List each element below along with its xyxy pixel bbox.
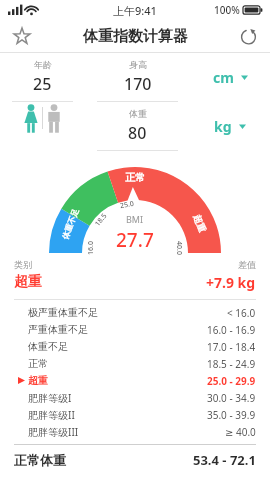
staticText: 53.4 - 72.1	[193, 451, 256, 469]
button[interactable]: Male	[43, 102, 65, 134]
staticText: 体重	[129, 108, 147, 119]
staticText: 18.5 - 24.9	[207, 357, 256, 371]
button[interactable]: 极严重体重不足	[14, 304, 256, 321]
button[interactable]: kg	[190, 102, 270, 150]
button[interactable]: 身高	[85, 53, 190, 101]
staticText: 体重不足	[28, 340, 68, 353]
button[interactable]: cm	[190, 53, 270, 101]
staticText: 27.7	[116, 227, 154, 253]
staticText: 肥胖等级I	[28, 391, 72, 405]
staticText: 35.0 - 39.9	[207, 408, 256, 422]
staticText: 极严重体重不足	[28, 306, 98, 319]
staticText: 超重	[192, 213, 208, 234]
staticText: 25	[33, 73, 52, 95]
button[interactable]: 年龄	[0, 53, 85, 101]
staticText: 正常体重	[14, 452, 66, 468]
staticText: < 16.0	[227, 306, 256, 320]
button[interactable]: 严重体重不足	[14, 321, 256, 338]
button[interactable]: Favorite	[6, 20, 38, 52]
button[interactable]: 肥胖等级II	[14, 406, 256, 423]
staticText: 超重	[28, 374, 48, 387]
staticText: 身高	[129, 59, 147, 70]
staticText: 17.0 - 18.4	[207, 340, 256, 354]
button[interactable]: 正常	[14, 355, 256, 372]
button[interactable]: 体重	[85, 102, 190, 150]
staticText: +7.9 kg	[206, 273, 256, 292]
staticText: 超重	[14, 273, 42, 291]
button[interactable]: 超重	[14, 372, 256, 389]
staticText: 80	[128, 122, 147, 144]
button[interactable]: Female	[20, 102, 42, 134]
staticText: 正常	[28, 357, 48, 370]
staticText: 类别	[14, 259, 32, 270]
staticText: 25.0 - 29.9	[207, 374, 256, 388]
staticText: 年龄	[34, 59, 52, 70]
staticText: 肥胖等级II	[28, 408, 75, 422]
button[interactable]: 正常体重	[14, 445, 256, 475]
staticText: 差值	[238, 259, 256, 270]
button[interactable]: 肥胖等级III	[14, 423, 256, 440]
staticText: ≥ 40.0	[225, 425, 256, 439]
staticText: cm	[213, 68, 234, 87]
staticText: 上午9:41	[113, 3, 157, 18]
staticText: BMI	[126, 213, 144, 225]
staticText: 18.5	[93, 211, 109, 229]
staticText: 严重体重不足	[28, 323, 88, 336]
staticText: 170	[124, 73, 152, 95]
staticText: 100%	[214, 3, 240, 17]
staticText: 肥胖等级III	[28, 425, 79, 439]
button[interactable]: 肥胖等级I	[14, 389, 256, 406]
staticText: 体重不足	[60, 207, 80, 241]
button[interactable]: 体重不足	[14, 338, 256, 355]
staticText: 40.0	[174, 241, 184, 255]
staticText: 30.0 - 34.9	[207, 391, 256, 405]
staticText: 16.0 - 16.9	[207, 323, 256, 337]
staticText: 25.0	[119, 199, 135, 211]
button[interactable]: Refresh	[232, 20, 264, 52]
staticText: 体重指数计算器	[83, 27, 188, 46]
staticText: 16.0	[86, 241, 96, 255]
staticText: kg	[214, 117, 232, 136]
staticText: 正常	[125, 171, 145, 184]
